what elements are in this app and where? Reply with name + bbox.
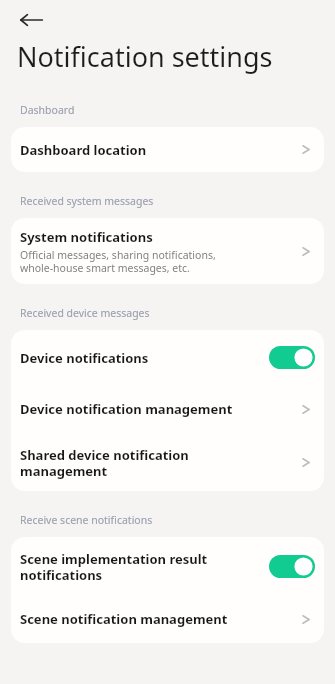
button[interactable]: Scene implementation result notification… [11, 537, 324, 595]
button[interactable]: System notifications [11, 218, 324, 284]
button[interactable]: Scene notification management [11, 595, 324, 643]
staticText: Dashboard location [20, 141, 147, 159]
button[interactable]: Back [14, 3, 48, 37]
staticText: Official messages, sharing notifications… [20, 248, 216, 275]
staticText: Received device messages [20, 306, 324, 320]
staticText: Device notification management [20, 400, 233, 418]
staticText: Notification settings [17, 38, 273, 75]
button[interactable]: Dashboard location [11, 127, 324, 172]
staticText: Shared device notification management [20, 446, 189, 479]
button[interactable]: Device notification management [11, 385, 324, 433]
staticText: Scene notification management [20, 610, 228, 628]
staticText: Device notifications [20, 349, 149, 367]
button[interactable]: Device notifications [11, 330, 324, 385]
staticText: Dashboard [20, 103, 324, 117]
staticText: Receive scene notifications [20, 513, 324, 527]
button[interactable]: Shared device notification management [11, 433, 324, 491]
button[interactable]: Toggle on [269, 346, 315, 369]
staticText: Scene implementation result notification… [20, 550, 208, 583]
button[interactable]: Toggle on [269, 555, 315, 578]
staticText: System notifications [20, 228, 153, 246]
staticText: Received system messages [20, 194, 324, 208]
